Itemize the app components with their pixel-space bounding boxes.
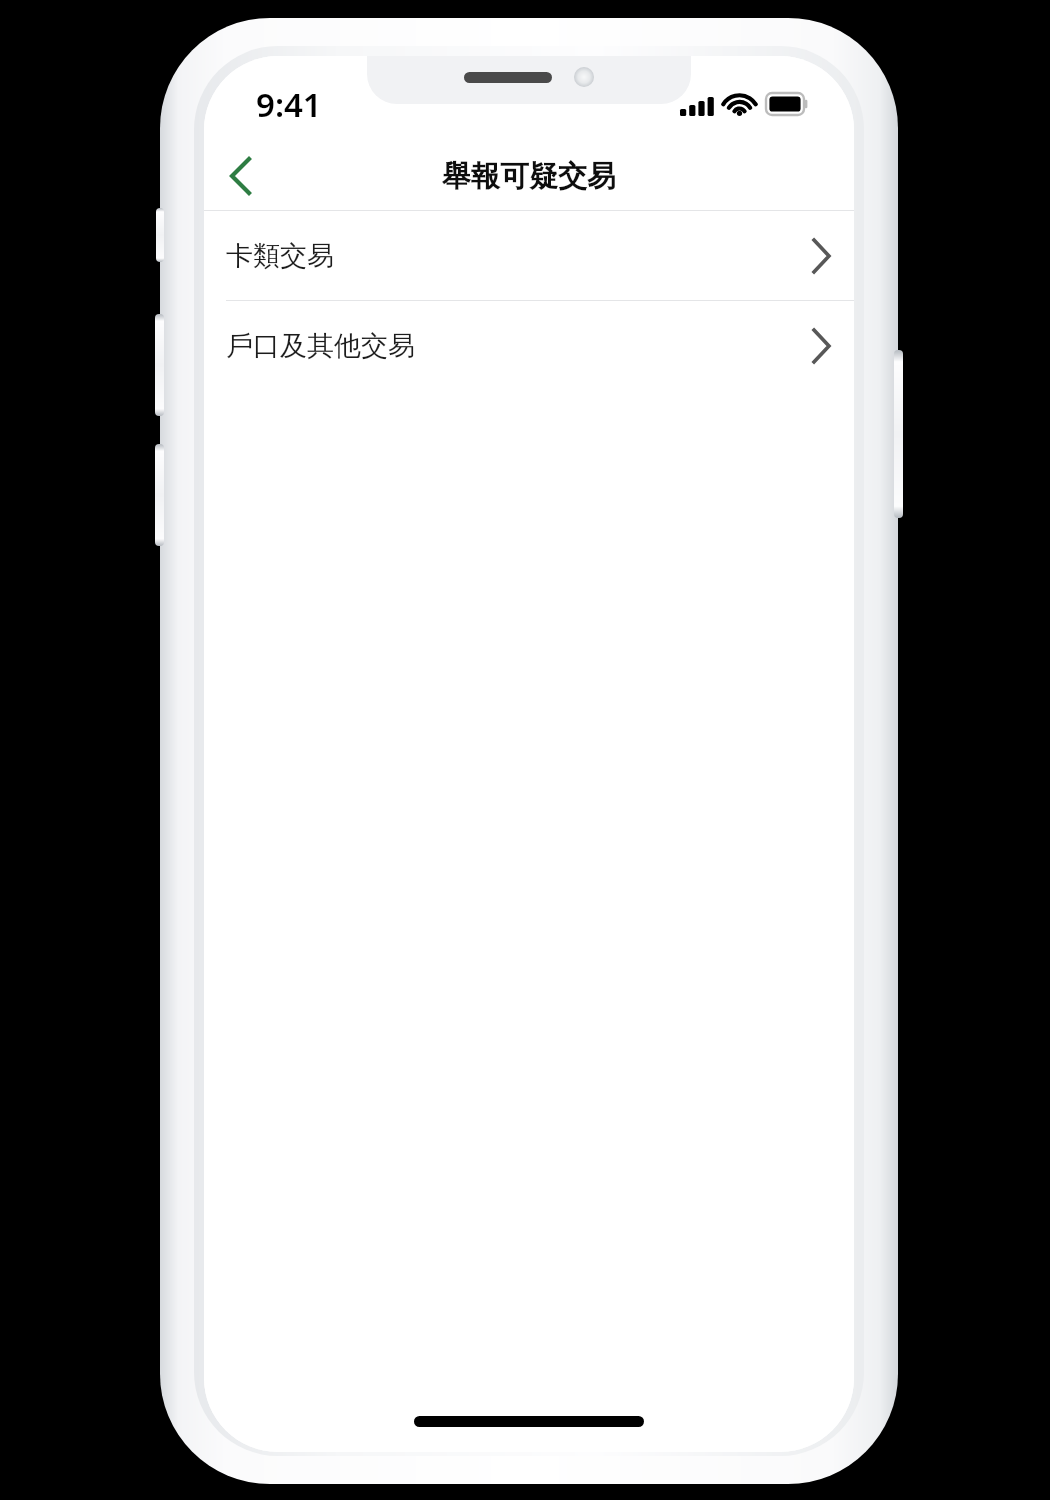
- staticText: 卡類交易: [226, 239, 334, 273]
- button[interactable]: 卡類交易: [204, 211, 854, 300]
- staticText: 舉報可疑交易: [442, 158, 616, 195]
- button[interactable]: 戶口及其他交易: [204, 301, 854, 390]
- button[interactable]: Back: [204, 142, 276, 210]
- staticText: 戶口及其他交易: [226, 329, 415, 363]
- staticText: 9:41: [256, 82, 322, 127]
